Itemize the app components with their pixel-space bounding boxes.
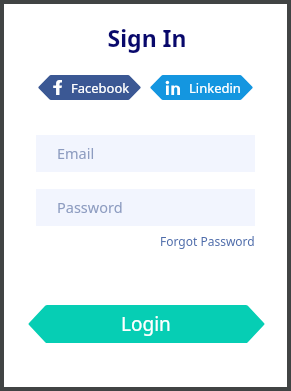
button[interactable]: Facebook logo [38, 75, 141, 100]
button[interactable]: Password [36, 189, 255, 226]
button[interactable]: Forgot Password [160, 233, 255, 249]
staticText: Facebook [71, 79, 130, 97]
other: LinkedIn logo [166, 81, 180, 95]
staticText: Email [57, 143, 95, 163]
button[interactable]: LinkedIn logo [150, 75, 253, 100]
staticText: Forgot Password [160, 233, 255, 249]
button[interactable]: Email [36, 135, 255, 172]
staticText: Login [121, 311, 171, 337]
staticText: Password [57, 197, 123, 217]
other: Facebook logo [53, 80, 62, 95]
button[interactable]: Login [28, 305, 265, 343]
staticText: Sign In [7, 22, 287, 53]
staticText: Linkedin [189, 79, 241, 97]
